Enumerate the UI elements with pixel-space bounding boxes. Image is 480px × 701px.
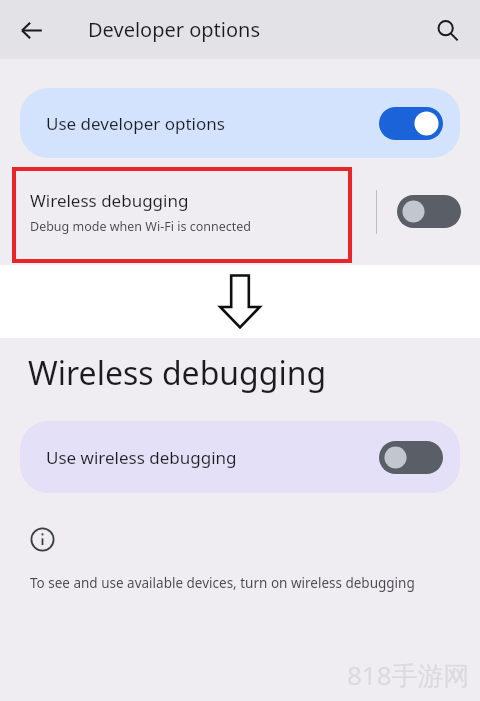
staticText: To see and use available devices, turn o… [30,574,415,592]
staticText: Debug mode when Wi-Fi is connected [30,218,251,235]
staticText: Wireless debugging [30,189,189,212]
button[interactable]: Use developer options [20,88,460,158]
staticText: Use wireless debugging [46,446,379,469]
staticText: Wireless debugging [28,351,327,395]
staticText: Use developer options [46,112,379,135]
staticText: Developer options [88,16,261,43]
button[interactable]: Wireless debugging toggle [377,158,480,265]
button[interactable]: Back [8,7,54,53]
button[interactable]: Use wireless debugging [20,421,460,493]
button[interactable]: Wireless debugging [0,158,376,265]
button[interactable]: Search [424,7,470,53]
staticText: 818手游网 [347,657,470,693]
